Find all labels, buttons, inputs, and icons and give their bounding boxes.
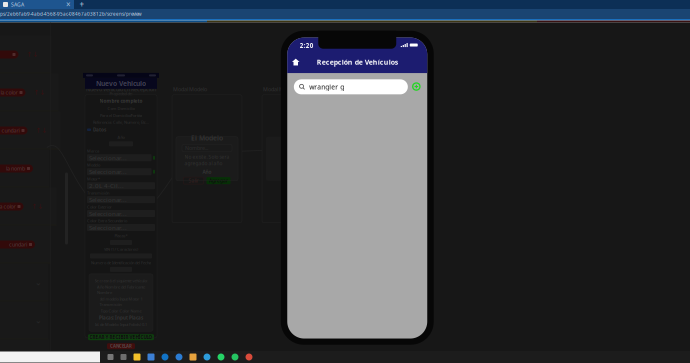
staticText: Color Extra Secundario xyxy=(87,218,127,223)
staticText: ↑↓ xyxy=(33,89,45,96)
staticText: ps/2eb6fab9-4abd-4568-95ac-08467a03812b/… xyxy=(0,11,142,17)
staticText: Modal Mar… xyxy=(263,85,292,93)
staticText: Seleccionar... xyxy=(89,195,127,204)
staticText: Placas* xyxy=(114,233,127,238)
staticText: Com Domicilio xyxy=(107,106,134,111)
staticText: Año Nombre del Fabricante Nombre xyxy=(97,284,145,295)
button[interactable] xyxy=(0,339,49,363)
staticText: × xyxy=(66,0,71,10)
staticText: Nuevo Vehiculo xyxy=(96,79,146,88)
staticText: ↑↓ xyxy=(31,203,43,210)
button[interactable]: Nueva pestaña xyxy=(74,0,90,9)
staticText: Color Exterior xyxy=(87,204,112,209)
staticText: wrangler g xyxy=(309,82,344,91)
staticText: cundari xyxy=(9,241,27,248)
staticText: + xyxy=(79,0,84,10)
staticText: Nuevo Vehiculo En Recepcion xyxy=(86,85,156,93)
button[interactable]: la color xyxy=(0,187,56,225)
staticText: Año xyxy=(202,169,211,175)
staticText: ↑↓ xyxy=(35,127,47,134)
staticText: Seleccionar... xyxy=(89,223,127,232)
button[interactable]: cundari xyxy=(0,111,60,149)
staticText: la nomb xyxy=(6,165,25,172)
staticText: Seleccionar... xyxy=(89,209,127,218)
staticText: Nombre completo xyxy=(99,98,142,104)
staticText: Tipo Color Color Name xyxy=(100,308,141,313)
staticText: Salir xyxy=(188,177,198,184)
staticText: Transmisión xyxy=(87,190,109,196)
staticText: El Modelo xyxy=(191,133,223,142)
button[interactable]: cundari xyxy=(0,225,51,263)
staticText: No existe. Solo sera agregado al año xyxy=(184,153,229,167)
staticText: Modal Modelo xyxy=(173,85,207,93)
staticText: SAGA xyxy=(11,1,24,8)
button[interactable]: SAGA xyxy=(0,0,74,9)
staticText: Datos xyxy=(93,126,106,133)
staticText: la color xyxy=(0,89,17,96)
button[interactable]: Inicio xyxy=(287,54,305,69)
staticText: Motor* xyxy=(87,176,100,182)
staticText: Propiedad de: xyxy=(109,91,132,96)
staticText: Modelo xyxy=(87,162,100,168)
staticText: Seleccionar... xyxy=(89,168,127,176)
staticText: del modelo Input Motor 1 Transmisión xyxy=(99,296,142,307)
staticText: VIN (17 Caracteres) xyxy=(104,246,138,252)
staticText: Año xyxy=(117,134,124,140)
staticText: Nombre... xyxy=(185,144,208,152)
button[interactable]: la color xyxy=(0,73,58,111)
staticText: ↑↓ xyxy=(26,51,38,58)
staticText: Recepción de Vehículos xyxy=(317,57,398,67)
staticText: la color xyxy=(0,203,15,210)
staticText: * Campos obligatorios xyxy=(88,352,127,358)
staticText: Agregar xyxy=(209,177,228,184)
staticText: 2:20 xyxy=(300,41,314,50)
staticText: Id. de Modelo: Input Folio(s) 0-1 xyxy=(95,322,147,327)
staticText: Seleccionar... xyxy=(89,154,127,162)
staticText: Se creará el siguiente vehículo: xyxy=(94,278,147,283)
staticText: cundari xyxy=(1,127,19,134)
button[interactable]: Agregar vehículo xyxy=(412,82,421,91)
staticText: Marca xyxy=(87,148,99,154)
staticText: Numero de Identificación del Fecha xyxy=(91,260,151,265)
staticText: 2.0L 4-Cil... xyxy=(89,181,124,190)
staticText: Para el Domicilio/Fortita xyxy=(100,113,142,118)
button[interactable] xyxy=(0,35,51,73)
staticText: Referencia: Calle, Numero, Etc... xyxy=(93,120,149,125)
staticText: Placas: Input Placas xyxy=(99,315,143,321)
button[interactable]: la nomb xyxy=(0,149,49,187)
staticText: CANCELAR xyxy=(110,343,132,349)
staticText: CREAR Y RECIBIR VEHÍCULO xyxy=(89,334,152,340)
